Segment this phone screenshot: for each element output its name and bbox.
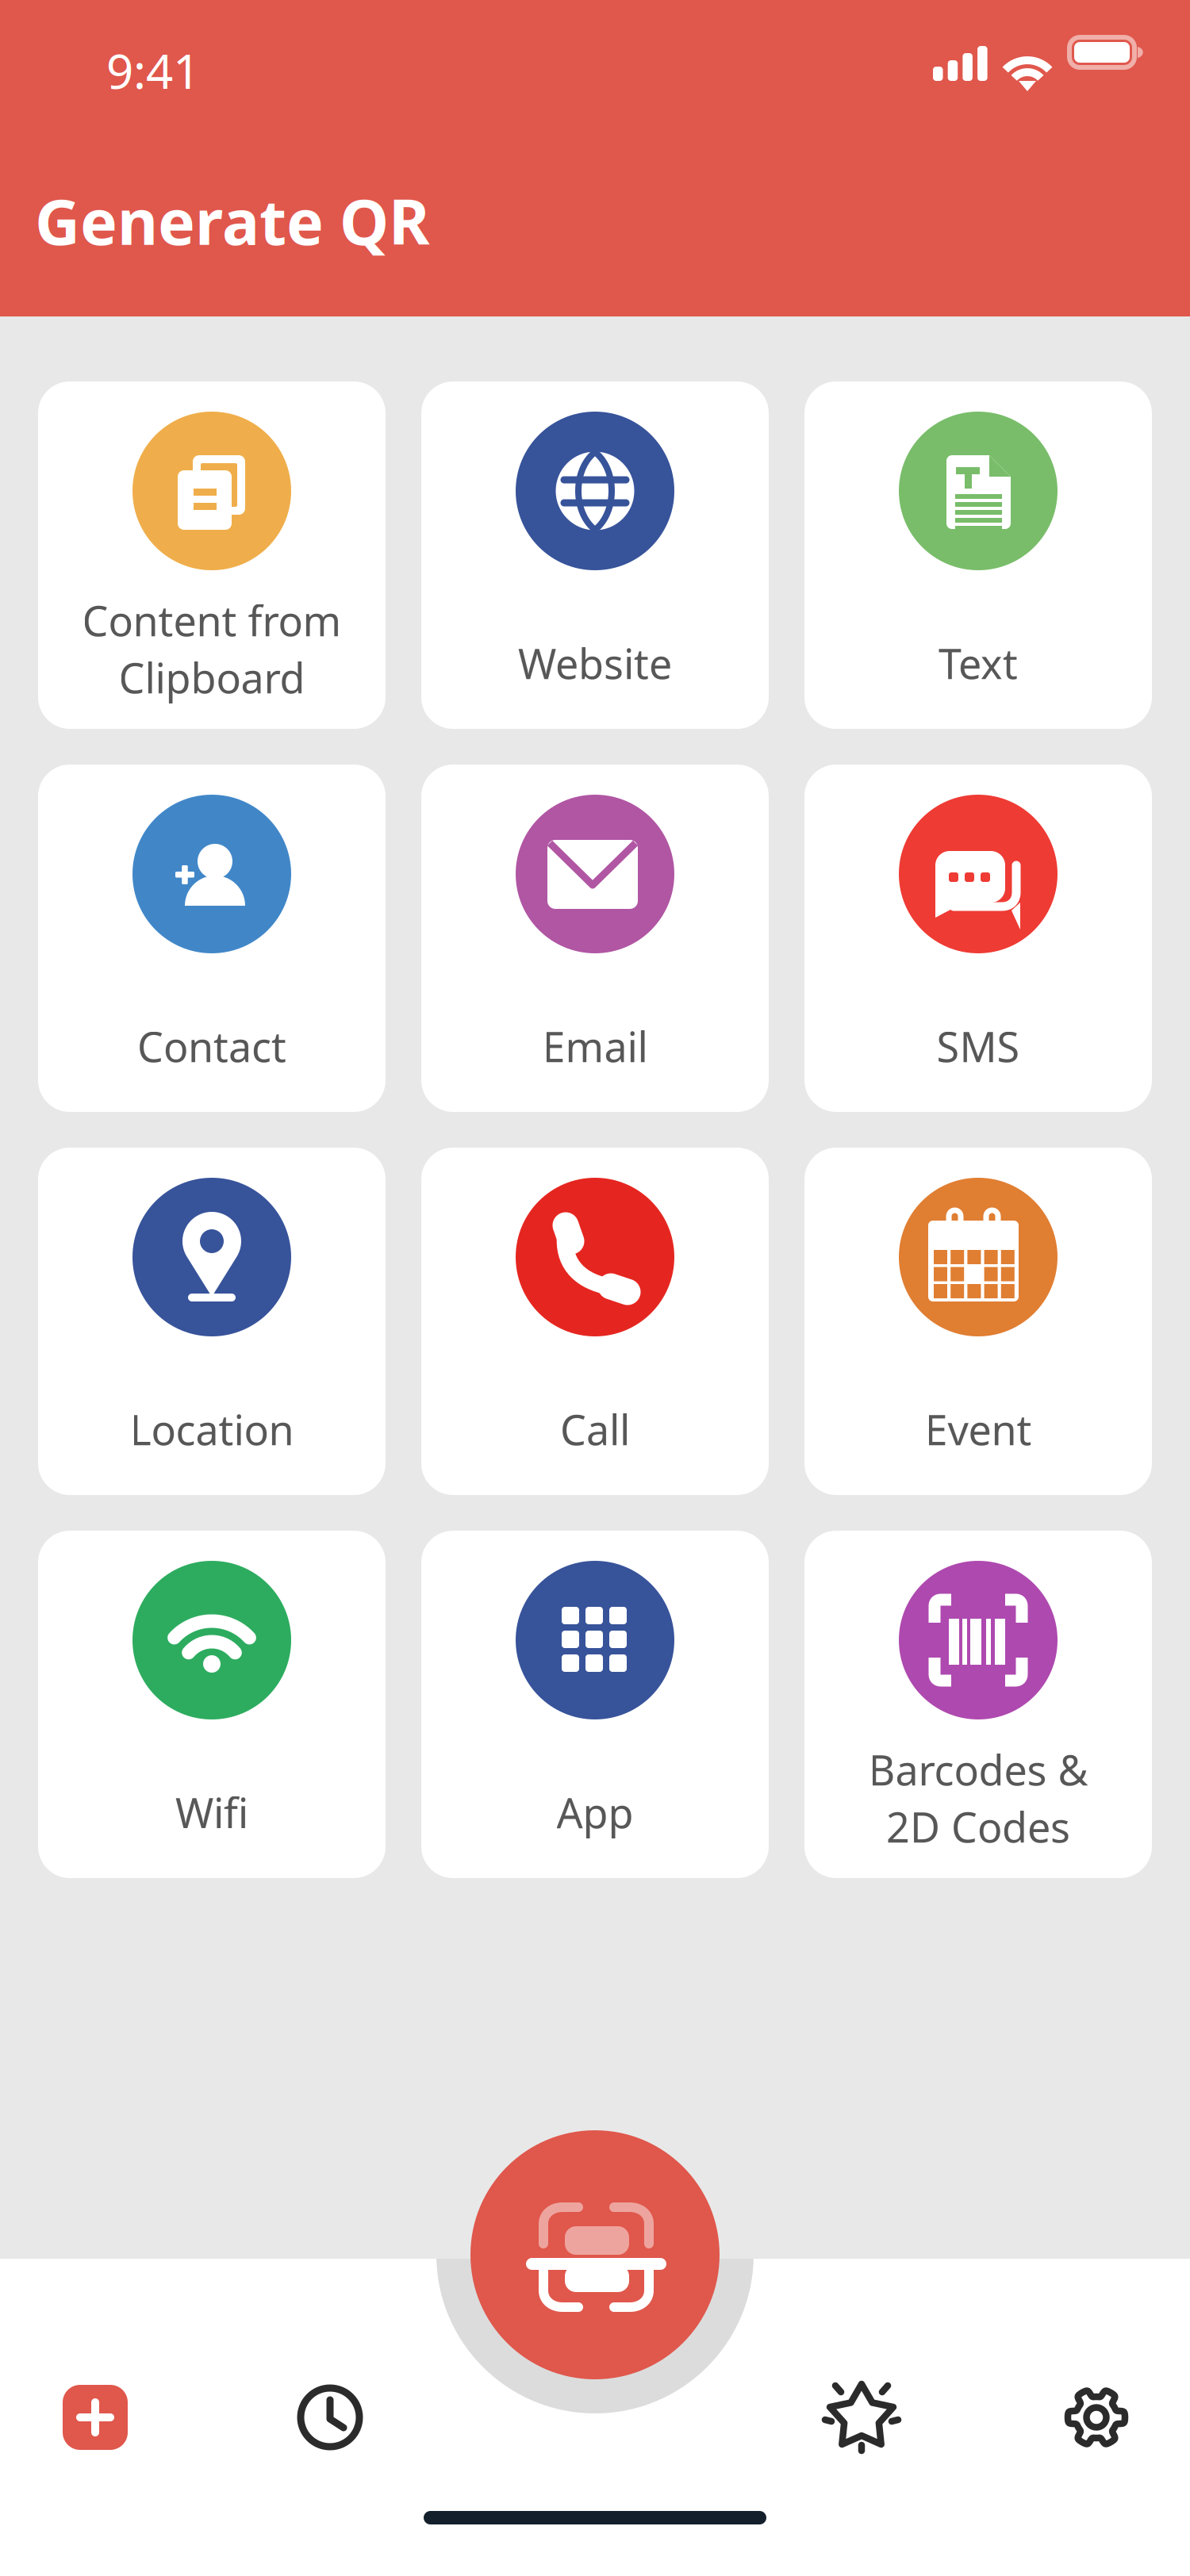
button[interactable]: History [296,2383,364,2451]
staticText: 2D Codes [886,1799,1070,1854]
staticText: Contact [137,1019,286,1074]
button[interactable]: Create [63,2385,128,2450]
button[interactable]: Text [804,381,1152,729]
staticText: Event [925,1402,1032,1457]
button[interactable]: Content from [38,381,386,729]
button[interactable]: App [421,1531,769,1878]
button[interactable]: Favourites [822,2375,901,2455]
button[interactable]: SMS [804,765,1152,1112]
button[interactable]: Scan [470,2130,720,2379]
button[interactable]: Contact [38,765,386,1112]
button[interactable]: Event [804,1148,1152,1495]
staticText: 9:41 [106,39,200,102]
button[interactable]: Email [421,765,769,1112]
button[interactable]: Settings [1062,2383,1130,2451]
staticText: Generate QR [35,179,430,262]
staticText: Content from [82,593,342,648]
staticText: Email [542,1019,648,1074]
staticText: Text [939,636,1018,690]
button[interactable]: Website [421,381,769,729]
staticText: Wifi [175,1785,248,1840]
staticText: Website [518,636,672,690]
staticText: SMS [937,1019,1020,1074]
staticText: Call [560,1402,630,1457]
button[interactable]: Wifi [38,1531,386,1878]
button[interactable]: Location [38,1148,386,1495]
staticText: Barcodes & [868,1742,1088,1797]
button[interactable]: Barcodes & [804,1531,1152,1878]
staticText: Location [130,1402,294,1457]
staticText: App [557,1785,633,1840]
staticText: Clipboard [119,650,305,705]
button[interactable]: Call [421,1148,769,1495]
